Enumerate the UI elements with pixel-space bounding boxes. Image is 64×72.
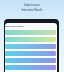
button[interactable] <box>5 51 56 56</box>
staticText: Explore your <box>24 3 40 6</box>
staticText: Interview Details <box>5 25 24 28</box>
staticText: Interview Details <box>21 8 43 11</box>
button[interactable] <box>5 37 56 42</box>
button[interactable] <box>5 30 56 35</box>
button[interactable] <box>5 65 56 70</box>
button[interactable] <box>5 58 56 63</box>
button[interactable] <box>5 44 56 49</box>
